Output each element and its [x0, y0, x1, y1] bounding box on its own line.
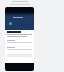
other: Logo: [9, 22, 12, 25]
